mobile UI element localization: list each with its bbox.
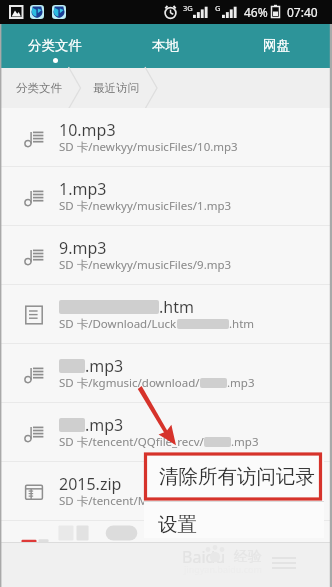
button[interactable]: .htm xyxy=(0,285,332,344)
staticText: 分类文件 xyxy=(28,37,82,54)
staticText: 10.mp3 xyxy=(59,119,116,141)
staticText: 07:40 xyxy=(287,4,318,20)
staticText: SD 卡/tencent/QQfile_recv/ xyxy=(59,434,204,450)
button[interactable]: 分类文件 xyxy=(0,24,110,68)
staticText: 经验 xyxy=(234,548,262,566)
staticText: SD 卡/tencent/M xyxy=(59,493,149,509)
staticText: .htm xyxy=(159,296,194,318)
staticText: 46% xyxy=(244,4,268,20)
staticText: 分类文件 xyxy=(16,81,62,95)
staticText: 3G xyxy=(183,3,193,13)
staticText: .mp3 xyxy=(85,414,124,436)
button[interactable]: 2015.zip xyxy=(0,462,332,521)
button[interactable]: .mp3 xyxy=(0,403,332,462)
staticText: 设置 xyxy=(158,512,197,537)
staticText: SD 卡/kgmusic/download/ xyxy=(59,375,200,391)
staticText: 清除所有访问记录 xyxy=(159,464,315,489)
staticText: SD 卡/newkyy/musicFiles/1.mp3 xyxy=(59,198,232,214)
staticText: .mp3 xyxy=(85,355,124,377)
staticText: .mp3 xyxy=(231,434,259,450)
staticText: .mp3 xyxy=(227,375,255,391)
staticText: SD 卡/Download/Luck xyxy=(59,316,177,332)
staticText: 1.mp3 xyxy=(59,178,107,200)
button[interactable]: 网盘 xyxy=(221,24,332,68)
staticText: G xyxy=(215,3,221,13)
button[interactable]: 本地 xyxy=(110,24,221,68)
staticText: Baidu xyxy=(182,546,226,568)
staticText: 本地 xyxy=(152,37,179,54)
button[interactable]: .mp3 xyxy=(0,344,332,403)
button[interactable]: 10.mp3 xyxy=(0,108,332,167)
button[interactable]: 1.mp3 xyxy=(0,167,332,226)
staticText: SD 卡/newkyy/musicFiles/10.mp3 xyxy=(59,139,238,155)
button[interactable]: 清除所有访问记录 xyxy=(144,452,324,501)
staticText: 9.mp3 xyxy=(59,237,107,259)
staticText: 网盘 xyxy=(263,37,290,54)
staticText: 2015.zip xyxy=(59,473,122,495)
staticText: SD 卡/newkyy/musicFiles/9.mp3 xyxy=(59,257,232,273)
staticText: .htm xyxy=(229,316,255,332)
staticText: 最近访问 xyxy=(93,81,139,95)
button[interactable]: 设置 xyxy=(144,502,324,538)
button[interactable]: 9.mp3 xyxy=(0,226,332,285)
